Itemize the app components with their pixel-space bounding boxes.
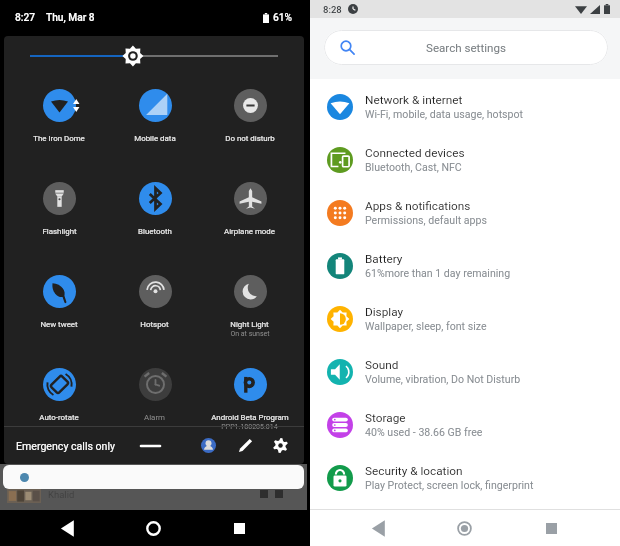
staticText: Thu, Mar 8 bbox=[46, 12, 95, 24]
button[interactable]: Battery bbox=[310, 239, 620, 292]
staticText: Android Beta Program bbox=[211, 413, 289, 422]
staticText: Wi-Fi, mobile, data usage, hotspot bbox=[365, 108, 524, 120]
staticText: PPP1.180205.014 bbox=[221, 423, 278, 431]
staticText: Hotspot bbox=[140, 320, 169, 329]
staticText: Emergency calls only bbox=[16, 440, 116, 452]
staticText: New tweet bbox=[40, 320, 78, 329]
button[interactable]: New tweet bbox=[11, 275, 107, 329]
button[interactable]: Apps & notifications bbox=[310, 186, 620, 239]
staticText: Alarm bbox=[144, 413, 165, 422]
staticText: Do not disturb bbox=[225, 134, 275, 143]
staticText: 61% bbox=[273, 12, 293, 24]
staticText: Flashlight bbox=[42, 227, 77, 236]
button[interactable]: Recents bbox=[221, 510, 257, 546]
button[interactable]: Mobile data bbox=[107, 89, 202, 143]
staticText: The Iron Dome bbox=[33, 134, 85, 143]
button[interactable]: Bluetooth bbox=[107, 182, 202, 236]
staticText: 40% used - 38.66 GB free bbox=[365, 426, 483, 438]
staticText: Battery bbox=[365, 252, 403, 266]
staticText: Bluetooth, Cast, NFC bbox=[365, 161, 462, 173]
button[interactable]: Back bbox=[360, 510, 396, 546]
button[interactable]: Storage bbox=[310, 398, 620, 451]
button[interactable]: Night Light bbox=[202, 275, 297, 338]
staticText: Mobile data bbox=[134, 134, 176, 143]
button[interactable]: Do not disturb bbox=[202, 89, 297, 143]
staticText: Volume, vibration, Do Not Disturb bbox=[365, 373, 521, 385]
staticText: On at sunset bbox=[230, 330, 270, 338]
button[interactable]: Display bbox=[310, 292, 620, 345]
staticText: 8:28 bbox=[323, 4, 342, 15]
button[interactable]: Recents bbox=[533, 510, 569, 546]
button[interactable]: Quick settings action bbox=[266, 427, 294, 464]
button[interactable]: Quick settings action bbox=[136, 427, 164, 464]
staticText: Security & location bbox=[365, 464, 463, 478]
staticText: Permissions, default apps bbox=[365, 214, 487, 226]
button[interactable]: Security & location bbox=[310, 451, 620, 504]
button[interactable]: Alarm bbox=[107, 368, 202, 422]
staticText: Search settings bbox=[426, 41, 506, 55]
button[interactable]: Hotspot bbox=[107, 275, 202, 329]
staticText: Connected devices bbox=[365, 146, 465, 160]
button[interactable]: Auto-rotate bbox=[11, 368, 107, 422]
button[interactable]: Sound bbox=[310, 345, 620, 398]
button[interactable]: Home bbox=[135, 510, 171, 546]
button[interactable]: Network & internet bbox=[310, 80, 620, 133]
staticText: Airplane mode bbox=[224, 227, 275, 236]
staticText: Play Protect, screen lock, fingerprint bbox=[365, 479, 534, 491]
button[interactable]: Airplane mode bbox=[202, 182, 297, 236]
button[interactable]: The Iron Dome bbox=[11, 89, 107, 143]
staticText: Sound bbox=[365, 358, 399, 372]
staticText: Auto-rotate bbox=[39, 413, 79, 422]
button[interactable]: Quick settings action bbox=[231, 427, 259, 464]
button[interactable]: Flashlight bbox=[11, 182, 107, 236]
staticText: Wallpaper, sleep, font size bbox=[365, 320, 487, 332]
button[interactable]: Home bbox=[446, 510, 482, 546]
staticText: Apps & notifications bbox=[365, 199, 471, 213]
staticText: Bluetooth bbox=[138, 227, 172, 236]
button[interactable]: Android Beta Program bbox=[202, 368, 297, 431]
staticText: Night Light bbox=[230, 320, 269, 329]
button[interactable]: Quick settings action bbox=[194, 427, 222, 464]
button[interactable]: Connected devices bbox=[310, 133, 620, 186]
staticText: 8:27 bbox=[15, 12, 36, 24]
button[interactable]: Search settings bbox=[324, 30, 608, 65]
staticText: Display bbox=[365, 305, 404, 319]
button[interactable]: Back bbox=[49, 510, 85, 546]
staticText: Storage bbox=[365, 411, 406, 425]
staticText: Khalid bbox=[48, 489, 75, 500]
staticText: 61%more than 1 day remaining bbox=[365, 267, 511, 279]
staticText: Network & internet bbox=[365, 93, 463, 107]
